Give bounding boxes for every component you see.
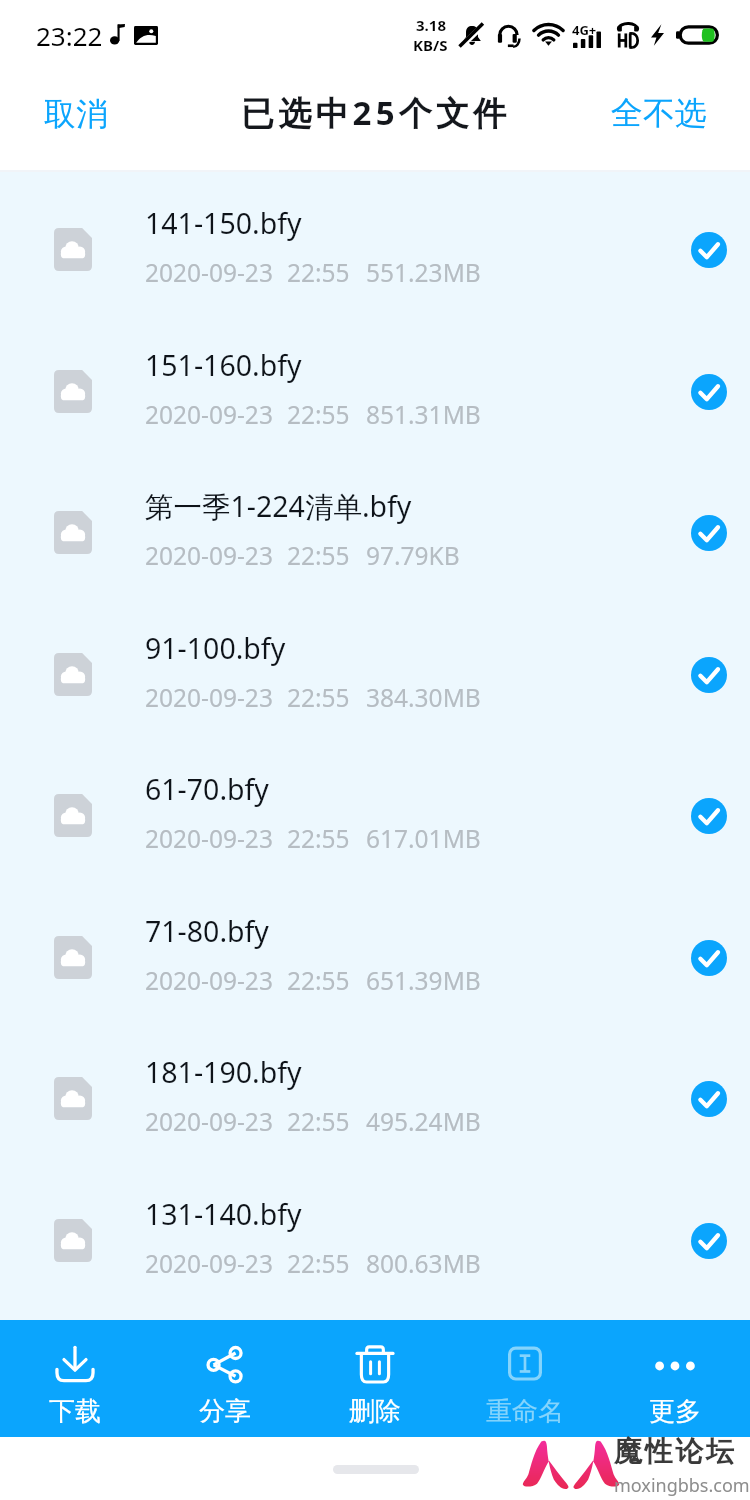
other: Selected — [691, 657, 727, 693]
other: Selected — [691, 1223, 727, 1259]
staticText: 2020-09-23 — [145, 1247, 273, 1280]
staticText: 141-150.bfy — [145, 204, 302, 243]
staticText: 61-70.bfy — [145, 770, 269, 809]
staticText: 更多 — [649, 1395, 701, 1428]
staticText: 851.31MB — [366, 398, 481, 431]
staticText: 删除 — [349, 1395, 401, 1428]
staticText: 651.39MB — [366, 964, 481, 997]
staticText: 97.79KB — [366, 539, 460, 572]
other: Selected — [691, 1081, 727, 1117]
button[interactable]: 删除 — [300, 1320, 450, 1437]
button[interactable]: 分享 — [150, 1320, 300, 1437]
staticText: KB/S — [413, 35, 448, 55]
button[interactable]: 更多 — [600, 1320, 750, 1437]
staticText: 全不选 — [611, 93, 707, 133]
other: Selected — [691, 515, 727, 551]
staticText: 2020-09-23 — [145, 398, 273, 431]
button[interactable]: 下载 — [0, 1320, 150, 1437]
staticText: 22:55 — [287, 1105, 350, 1138]
button[interactable]: 取消 — [0, 82, 138, 158]
button[interactable]: 131-140.bfy — [0, 1169, 750, 1311]
button[interactable]: 71-80.bfy — [0, 886, 750, 1028]
button[interactable]: 第一季1-224清单.bfy — [0, 461, 750, 603]
staticText: 3.18 — [416, 15, 446, 35]
staticText: 23:22 — [36, 18, 103, 53]
other: Selected — [691, 232, 727, 268]
staticText: 22:55 — [287, 256, 350, 289]
other: Selected — [691, 940, 727, 976]
staticText: 2020-09-23 — [145, 964, 273, 997]
button[interactable]: 重命名 — [450, 1320, 600, 1437]
staticText: 2020-09-23 — [145, 256, 273, 289]
staticText: 魔性论坛 — [614, 1434, 737, 1469]
staticText: 22:55 — [287, 1247, 350, 1280]
staticText: 22:55 — [287, 822, 350, 855]
button[interactable]: 181-190.bfy — [0, 1027, 750, 1169]
staticText: 已选中25个文件 — [241, 90, 511, 135]
staticText: 2020-09-23 — [145, 539, 273, 572]
button[interactable]: 全不选 — [581, 82, 750, 158]
staticText: 取消 — [44, 94, 108, 134]
staticText: 71-80.bfy — [145, 912, 269, 951]
staticText: 22:55 — [287, 539, 350, 572]
staticText: 91-100.bfy — [145, 629, 286, 668]
staticText: 重命名 — [486, 1395, 564, 1428]
staticText: 151-160.bfy — [145, 346, 302, 385]
staticText: moxingbbs.com — [614, 1473, 750, 1497]
other: Selected — [691, 798, 727, 834]
staticText: 4G+ — [572, 21, 597, 39]
staticText: 2020-09-23 — [145, 822, 273, 855]
other: Selected — [691, 374, 727, 410]
staticText: 2020-09-23 — [145, 681, 273, 714]
staticText: 下载 — [49, 1395, 101, 1428]
staticText: 22:55 — [287, 964, 350, 997]
staticText: 800.63MB — [366, 1247, 481, 1280]
staticText: 分享 — [199, 1395, 251, 1428]
staticText: 495.24MB — [366, 1105, 481, 1138]
staticText: 22:55 — [287, 398, 350, 431]
staticText: 384.30MB — [366, 681, 481, 714]
button[interactable]: 91-100.bfy — [0, 603, 750, 745]
staticText: 551.23MB — [366, 256, 481, 289]
staticText: 181-190.bfy — [145, 1053, 302, 1092]
staticText: 22:55 — [287, 681, 350, 714]
staticText: 617.01MB — [366, 822, 481, 855]
staticText: 第一季1-224清单.bfy — [145, 487, 412, 526]
staticText: 2020-09-23 — [145, 1105, 273, 1138]
staticText: 131-140.bfy — [145, 1195, 302, 1234]
button[interactable]: 61-70.bfy — [0, 744, 750, 886]
button[interactable]: 141-150.bfy — [0, 178, 750, 320]
button[interactable]: 151-160.bfy — [0, 320, 750, 462]
